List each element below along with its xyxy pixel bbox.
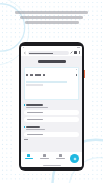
button[interactable] [24, 132, 79, 137]
button[interactable]: Format [32, 74, 33, 76]
button[interactable] [28, 51, 69, 55]
button[interactable]: Navigation item [21, 154, 36, 164]
button[interactable]: Format [30, 74, 31, 76]
button[interactable] [24, 117, 79, 122]
button[interactable]: Add [70, 154, 79, 163]
button[interactable]: Format [76, 74, 77, 76]
button[interactable]: Navigation item [52, 154, 68, 164]
button[interactable]: Navigation item [36, 154, 52, 164]
button[interactable]: Back [23, 51, 27, 55]
button[interactable]: Format [44, 74, 45, 76]
button[interactable] [24, 110, 79, 115]
button[interactable]: Tabs [74, 51, 77, 54]
button[interactable]: Format [31, 74, 32, 76]
button[interactable]: Format [43, 74, 44, 76]
button[interactable]: More options [78, 51, 80, 54]
button[interactable]: Share [70, 51, 73, 54]
